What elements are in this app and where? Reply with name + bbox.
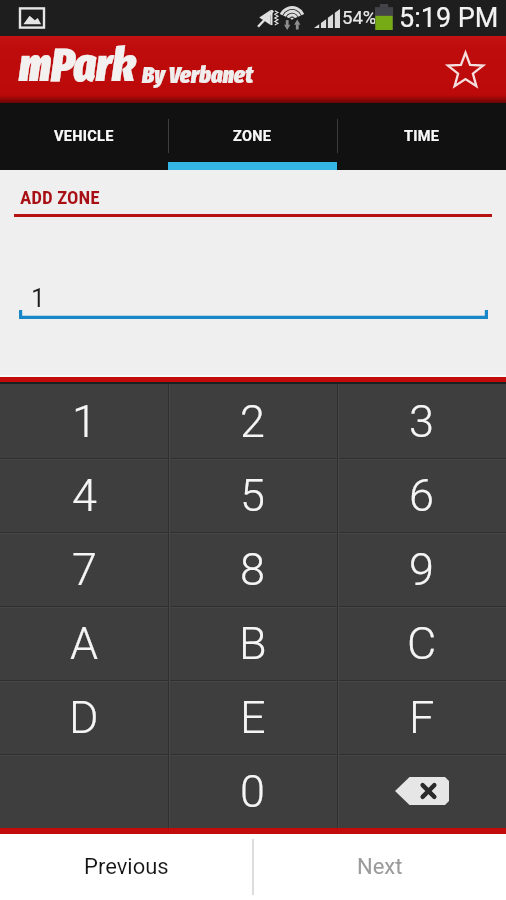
button[interactable]: Previous bbox=[0, 834, 252, 900]
button[interactable]: Favorite bbox=[439, 44, 491, 96]
other: Backspace bbox=[395, 777, 449, 805]
button[interactable]: B bbox=[168, 606, 337, 680]
button[interactable]: C bbox=[337, 606, 506, 680]
staticText: Previous bbox=[84, 854, 169, 880]
staticText: 3 bbox=[409, 395, 434, 448]
button[interactable]: 0 bbox=[168, 754, 337, 828]
button[interactable]: 6 bbox=[337, 458, 506, 532]
staticText: 5 bbox=[240, 469, 265, 522]
staticText: 2 bbox=[240, 395, 265, 448]
staticText: 7 bbox=[72, 543, 97, 596]
staticText: 6 bbox=[409, 469, 434, 522]
staticText: B bbox=[239, 617, 267, 670]
staticText: By Verbanet bbox=[142, 61, 254, 90]
button[interactable]: 5 bbox=[168, 458, 337, 532]
button[interactable]: A bbox=[0, 606, 168, 680]
staticText: 0 bbox=[240, 765, 265, 818]
staticText: A bbox=[70, 617, 99, 670]
button[interactable]: ZONE bbox=[168, 103, 337, 162]
button[interactable]: TIME bbox=[337, 103, 506, 162]
staticText: C bbox=[407, 617, 437, 670]
button[interactable]: 9 bbox=[337, 532, 506, 606]
button[interactable]: F bbox=[337, 680, 506, 754]
staticText: VEHICLE bbox=[54, 128, 114, 145]
staticText: E bbox=[240, 691, 266, 744]
button[interactable]: VEHICLE bbox=[0, 103, 168, 162]
staticText: D bbox=[69, 691, 99, 744]
button[interactable]: Backspace bbox=[337, 754, 506, 828]
button[interactable]: 2 bbox=[168, 384, 337, 458]
staticText: 4 bbox=[72, 469, 97, 522]
staticText: 1 bbox=[31, 284, 46, 313]
button[interactable]: E bbox=[168, 680, 337, 754]
button[interactable]: Next bbox=[254, 834, 506, 900]
staticText: 54% bbox=[342, 7, 377, 29]
button[interactable]: 8 bbox=[168, 532, 337, 606]
staticText: 1 bbox=[72, 395, 97, 448]
staticText: ZONE bbox=[233, 128, 272, 145]
staticText: 8 bbox=[240, 543, 265, 596]
staticText: ADD ZONE bbox=[20, 186, 100, 208]
staticText: F bbox=[409, 691, 435, 744]
staticText: mPark bbox=[19, 37, 136, 93]
button[interactable]: 1 bbox=[0, 384, 168, 458]
staticText: 5:19 PM bbox=[399, 2, 499, 34]
staticText: TIME bbox=[404, 128, 440, 145]
staticText: Next bbox=[357, 854, 403, 880]
button[interactable]: 3 bbox=[337, 384, 506, 458]
button[interactable]: D bbox=[0, 680, 168, 754]
button[interactable]: 7 bbox=[0, 532, 168, 606]
button[interactable]: 4 bbox=[0, 458, 168, 532]
staticText: 9 bbox=[409, 543, 434, 596]
